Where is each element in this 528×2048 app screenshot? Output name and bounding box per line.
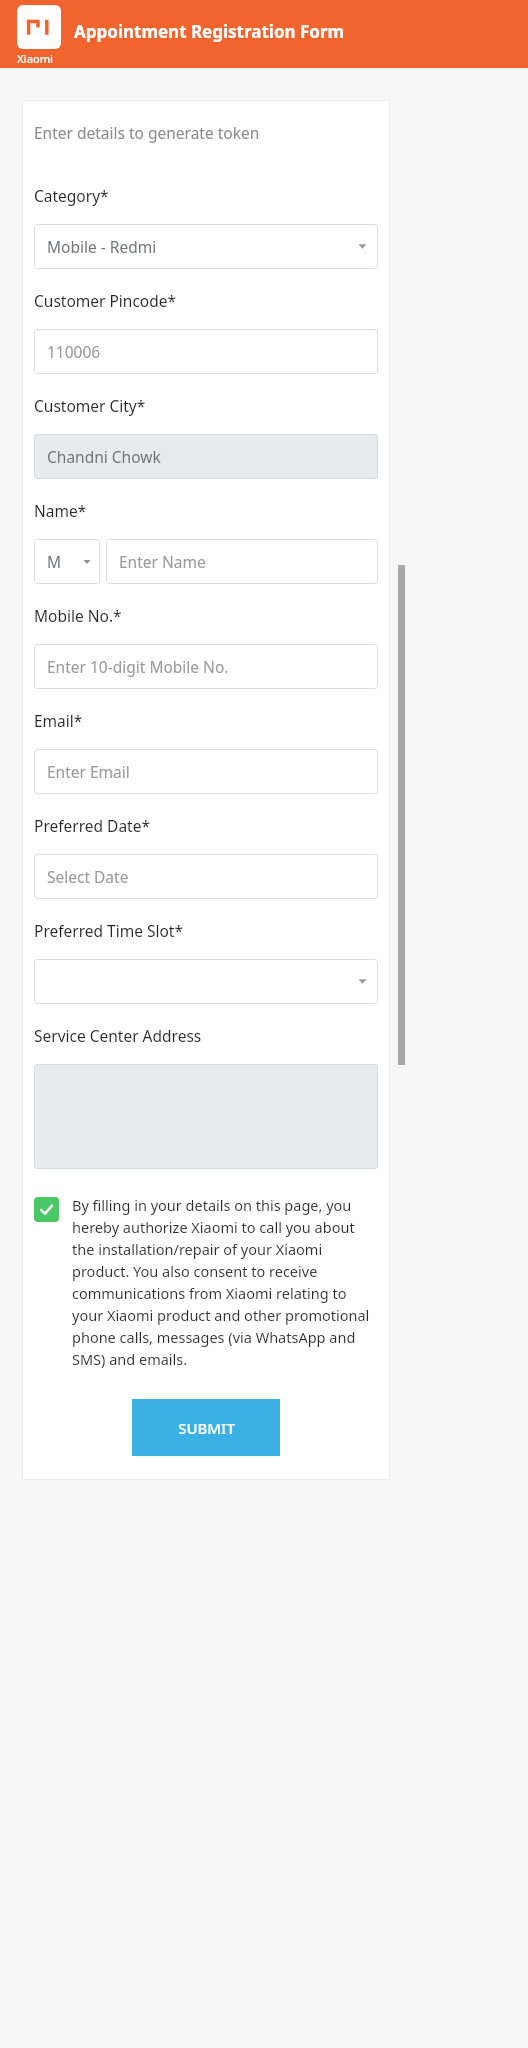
staticText: Enter Name	[119, 551, 206, 572]
staticText: Enter details to generate token	[34, 122, 260, 143]
other: Consent checkbox, checked	[34, 1197, 59, 1222]
staticText: Xiaomi	[17, 51, 54, 66]
staticText: Select Date	[47, 866, 129, 887]
staticText: SUBMIT	[178, 1418, 235, 1438]
button[interactable]: Xiaomi logo	[17, 5, 61, 49]
staticText: M	[47, 551, 62, 572]
staticText: Name*	[34, 500, 87, 521]
button[interactable]: Consent checkbox, checked	[34, 1195, 378, 1369]
staticText: Customer Pincode*	[34, 290, 177, 311]
button[interactable]: SUBMIT	[132, 1399, 280, 1456]
staticText: 110006	[47, 341, 101, 362]
button[interactable]: Enter Email	[34, 749, 378, 794]
staticText: Email*	[34, 710, 83, 731]
button[interactable]: Enter Name	[106, 539, 378, 584]
button[interactable]: 110006	[34, 329, 378, 374]
button[interactable]: Select Date	[34, 854, 378, 899]
button[interactable]: M	[34, 539, 100, 584]
button[interactable]: Chandni Chowk	[34, 434, 378, 479]
staticText: Enter Email	[47, 761, 130, 782]
staticText: By filling in your details on this page,…	[72, 1195, 378, 1369]
button[interactable]: Enter 10-digit Mobile No.	[34, 644, 378, 689]
staticText: Preferred Time Slot*	[34, 920, 183, 941]
staticText: Service Center Address	[34, 1025, 202, 1046]
staticText: Mobile No.*	[34, 605, 122, 626]
button[interactable]	[34, 959, 378, 1004]
staticText: Enter 10-digit Mobile No.	[47, 656, 229, 677]
staticText: Appointment Registration Form	[74, 20, 345, 43]
staticText: Preferred Date*	[34, 815, 150, 836]
staticText: Mobile - Redmi	[47, 236, 157, 257]
staticText: Chandni Chowk	[47, 446, 161, 467]
staticText: Customer City*	[34, 395, 146, 416]
button[interactable]: Mobile - Redmi	[34, 224, 378, 269]
staticText: Category*	[34, 185, 109, 206]
